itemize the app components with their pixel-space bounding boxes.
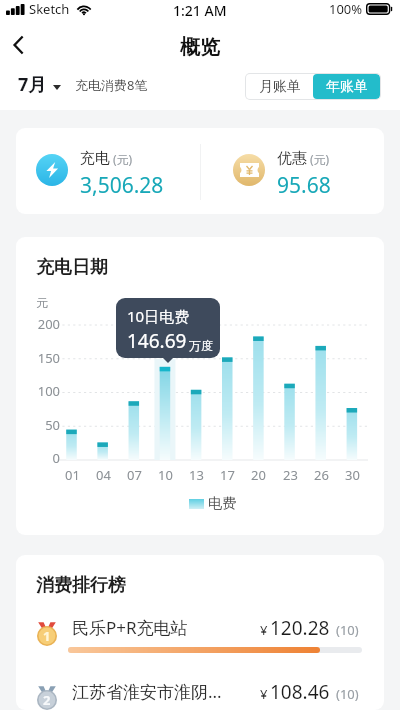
staticText: 17 [220,466,235,484]
staticText: 30 [345,466,360,484]
staticText: 3,506.28 [80,171,164,200]
staticText: 元 [36,295,48,310]
staticText: 100% [329,0,363,18]
staticText: 1:21 AM [173,1,227,20]
staticText: 电费 [208,495,236,513]
staticText: 充电消费8笔 [75,76,148,94]
staticText: (10) [336,685,359,703]
staticText: 1 [43,627,51,645]
staticText: 07 [127,466,142,484]
button[interactable]: Back [2,26,38,66]
staticText: 01 [65,466,80,484]
staticText: 概览 [180,35,220,60]
staticText: 95.68 [277,171,331,200]
staticText: 150 [16,349,60,367]
staticText: 04 [96,466,111,484]
staticText: (元) [310,151,330,167]
staticText: Sketch [29,0,70,18]
staticText: 26 [314,466,329,484]
staticText: 万度 [189,338,213,353]
staticText: 120.28 [270,615,330,641]
staticText: 0 [16,449,60,467]
button[interactable]: 2 [16,684,384,710]
staticText: 50 [16,416,60,434]
button[interactable]: 月账单 [246,74,313,99]
staticText: 民乐P+R充电站 [72,616,247,639]
staticText: 消费排行榜 [36,574,126,597]
button[interactable]: 7月 [18,72,61,97]
staticText: 月账单 [259,78,301,96]
staticText: 7月 [18,72,47,97]
staticText: (元) [113,151,133,167]
button[interactable]: 年账单 [313,74,380,99]
staticText: ¥ [260,685,268,703]
staticText: 100 [16,382,60,400]
staticText: 200 [16,315,60,333]
staticText: 13 [189,466,204,484]
staticText: (10) [336,621,359,639]
staticText: 23 [283,466,298,484]
staticText: 江苏省淮安市淮阴... [72,680,247,703]
staticText: 10日电费 [127,306,190,326]
staticText: ¥ [260,621,268,639]
staticText: 充电 [80,149,110,168]
staticText: 优惠 [277,149,307,168]
button[interactable]: 1 [16,620,384,660]
staticText: 10 [158,466,173,484]
staticText: 年账单 [326,78,368,96]
staticText: 146.69 [127,328,187,354]
staticText: 108.46 [270,679,330,705]
staticText: 充电日期 [36,256,108,279]
staticText: 20 [251,466,266,484]
staticText: 2 [43,691,51,709]
